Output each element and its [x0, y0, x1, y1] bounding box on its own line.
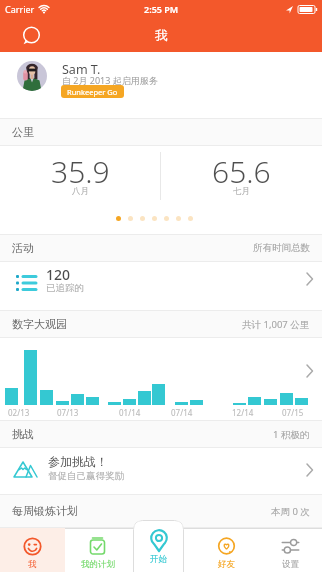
- button[interactable]: 120: [0, 262, 322, 310]
- staticText: 每周锻炼计划: [12, 504, 78, 518]
- staticText: 设置: [282, 559, 299, 570]
- staticText: 八月: [72, 186, 89, 197]
- staticText: 07/14: [171, 407, 193, 418]
- staticText: 已追踪的: [46, 282, 84, 294]
- staticText: 65.6: [212, 151, 271, 192]
- staticText: 我: [28, 559, 37, 570]
- staticText: 督促自己赢得奖励: [48, 470, 124, 482]
- staticText: 公里: [12, 125, 34, 139]
- staticText: 12/14: [232, 407, 254, 418]
- staticText: 07/15: [282, 407, 304, 418]
- staticText: 共计 1,007 公里: [242, 318, 310, 331]
- staticText: 2:55 PM: [144, 3, 179, 15]
- button[interactable]: Sam T.: [0, 52, 322, 118]
- staticText: 07/13: [57, 407, 79, 418]
- button[interactable]: 开始: [133, 520, 184, 572]
- staticText: 02/13: [8, 407, 30, 418]
- button[interactable]: 我的计划: [65, 528, 130, 572]
- staticText: Runkeeper Go: [67, 87, 118, 97]
- staticText: 开始: [150, 554, 167, 565]
- button[interactable]: [18, 23, 44, 49]
- staticText: 120: [46, 265, 71, 284]
- staticText: 我的计划: [81, 559, 115, 570]
- staticText: 参加挑战！: [48, 454, 108, 469]
- staticText: 本周 0 次: [271, 505, 310, 518]
- button[interactable]: 参加挑战！: [0, 448, 322, 494]
- staticText: Carrier: [5, 3, 35, 15]
- button[interactable]: Runkeeper Go: [61, 85, 124, 98]
- staticText: 我: [155, 27, 168, 43]
- staticText: 1 积极的: [273, 428, 310, 441]
- staticText: 好友: [218, 559, 235, 570]
- staticText: 35.9: [51, 151, 110, 192]
- staticText: 自 2月 2013 起启用服务: [62, 74, 158, 86]
- staticText: 01/14: [119, 407, 141, 418]
- staticText: 七月: [233, 186, 250, 197]
- staticText: Sam T.: [62, 61, 101, 78]
- staticText: 所有时间总数: [253, 242, 310, 254]
- button[interactable]: 我: [0, 528, 65, 572]
- button[interactable]: 好友: [194, 528, 258, 572]
- staticText: 数字大观园: [12, 317, 67, 331]
- staticText: 挑战: [12, 427, 34, 441]
- button[interactable]: 设置: [258, 528, 322, 572]
- staticText: 活动: [12, 241, 34, 255]
- button[interactable]: 02/13: [0, 338, 322, 420]
